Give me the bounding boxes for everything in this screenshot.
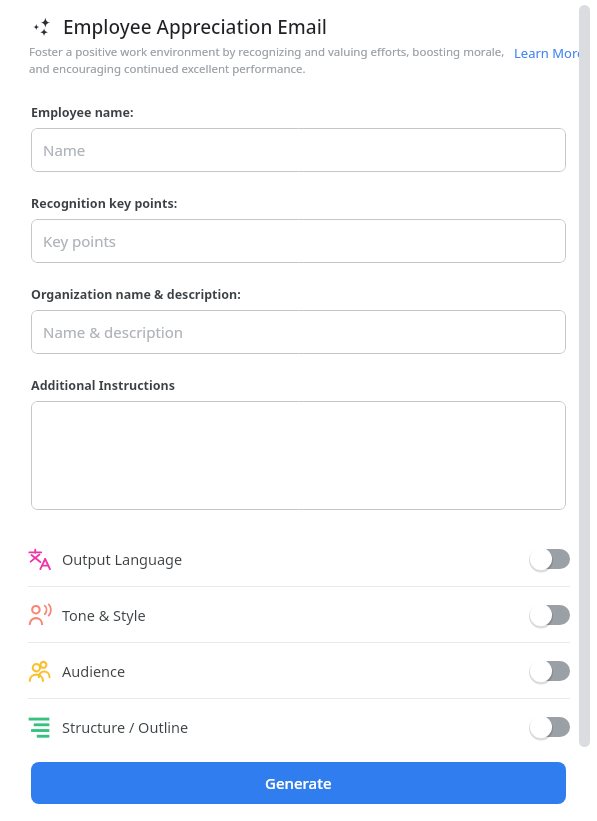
staticText: Employee name: <box>31 104 134 121</box>
button[interactable]: Generate <box>31 762 566 804</box>
staticText: Tone & Style <box>62 605 528 625</box>
button[interactable]: Structure / Outline <box>0 699 597 754</box>
button[interactable]: Learn More <box>512 42 587 64</box>
staticText: Employee Appreciation Email <box>63 14 327 40</box>
button[interactable]: Key points <box>31 219 566 263</box>
staticText: Foster a positive work environment by re… <box>29 44 505 77</box>
staticText: Organization name & description: <box>31 286 241 303</box>
staticText: Audience <box>62 661 528 681</box>
button[interactable]: Tone & Style <box>0 587 597 642</box>
staticText: Additional Instructions <box>31 377 175 394</box>
button[interactable] <box>31 401 566 510</box>
staticText: Structure / Outline <box>62 717 528 737</box>
staticText: Name & description <box>43 322 184 342</box>
staticText: Output Language <box>62 549 528 569</box>
staticText: Key points <box>43 231 117 251</box>
staticText: Name <box>43 140 86 160</box>
button[interactable]: Audience <box>0 643 597 698</box>
button[interactable]: Output Language <box>0 531 597 586</box>
button[interactable]: Name <box>31 128 566 172</box>
staticText: Generate <box>265 773 332 793</box>
staticText: Learn More <box>514 44 585 62</box>
staticText: Recognition key points: <box>31 195 178 212</box>
button[interactable]: Name & description <box>31 310 566 354</box>
